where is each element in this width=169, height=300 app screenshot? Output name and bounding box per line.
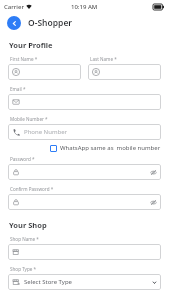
button[interactable]: WhatsApp same as mobile number — [50, 144, 161, 152]
button[interactable] — [8, 244, 161, 260]
staticText: Your Shop — [9, 220, 47, 230]
staticText: 10:19 AM — [71, 3, 98, 11]
staticText: O-Shopper — [28, 17, 73, 29]
staticText: Shop Type * — [10, 266, 37, 272]
staticText: First Name * — [10, 56, 38, 62]
staticText: Password * — [10, 156, 35, 162]
button[interactable]: Back — [7, 16, 21, 30]
button[interactable] — [88, 64, 161, 80]
staticText: Confirm Password * — [10, 186, 54, 192]
staticText: Mobile Number * — [10, 116, 48, 122]
button[interactable] — [8, 64, 81, 80]
button[interactable]: Phone Number — [8, 124, 161, 140]
staticText: Last Name * — [90, 56, 117, 62]
staticText: Select Store Type — [24, 278, 72, 286]
staticText: WhatsApp same as mobile number — [60, 144, 161, 152]
staticText: Email * — [10, 86, 26, 92]
button[interactable] — [8, 164, 161, 180]
button[interactable] — [8, 94, 161, 110]
button[interactable] — [8, 194, 161, 210]
staticText: Your Profile — [9, 40, 53, 50]
staticText: Phone Number — [24, 128, 68, 136]
staticText: Shop Name * — [10, 236, 39, 242]
button[interactable]: Select Store Type — [8, 274, 161, 290]
staticText: Carrier — [4, 3, 24, 11]
